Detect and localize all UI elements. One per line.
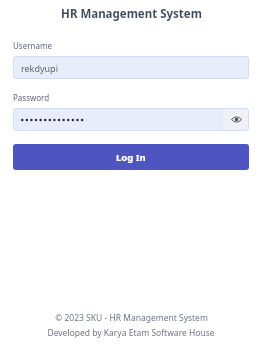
staticText: HR Management System bbox=[61, 6, 202, 22]
button[interactable]: Show password bbox=[223, 108, 249, 131]
staticText: © 2023 SKU - HR Management System bbox=[55, 312, 208, 324]
staticText: Log In bbox=[116, 151, 146, 164]
staticText: Developed by Karya Etam Software House bbox=[47, 327, 215, 339]
staticText: Password bbox=[13, 92, 50, 103]
button[interactable]: Log In bbox=[13, 144, 249, 170]
button[interactable] bbox=[13, 108, 223, 131]
staticText: Username bbox=[13, 40, 52, 51]
staticText: rekdyupi bbox=[21, 62, 58, 74]
button[interactable]: rekdyupi bbox=[13, 56, 249, 79]
